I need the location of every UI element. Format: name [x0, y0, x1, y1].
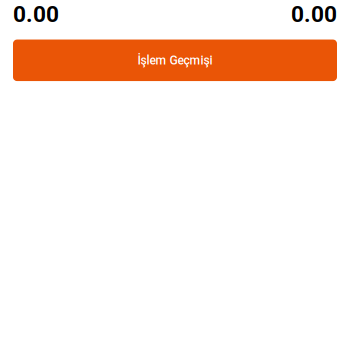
staticText: 0.00 [13, 1, 59, 28]
staticText: 0.00 [291, 1, 337, 28]
staticText: İşlem Geçmişi [137, 53, 212, 67]
button[interactable]: İşlem Geçmişi [13, 40, 337, 81]
